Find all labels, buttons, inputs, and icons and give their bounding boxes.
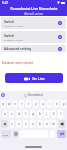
button[interactable]: l xyxy=(58,110,63,118)
button[interactable]: Switch xyxy=(1,31,66,43)
staticText: ?123 xyxy=(3,133,9,136)
staticText: v xyxy=(32,122,34,126)
button[interactable]: . xyxy=(50,130,55,138)
staticText: o xyxy=(56,102,58,106)
staticText: Ahmed Loubna xyxy=(24,12,43,16)
button[interactable]: d xyxy=(16,110,21,118)
staticText: k xyxy=(53,112,55,116)
button[interactable]: u xyxy=(40,100,45,108)
button[interactable]: a xyxy=(3,110,7,118)
button[interactable]: k xyxy=(51,110,56,118)
staticText: CAMERA SWITCH xyxy=(4,38,24,41)
staticText: l xyxy=(60,112,61,116)
staticText: 9:41 xyxy=(2,1,9,5)
staticText: q xyxy=(2,102,4,106)
staticText: Go Live xyxy=(32,76,45,81)
button[interactable]: x xyxy=(16,120,21,128)
button[interactable]: s xyxy=(9,110,14,118)
button[interactable]: Emoji xyxy=(13,130,18,138)
button[interactable]: n xyxy=(44,120,49,128)
button[interactable]: Go Live xyxy=(5,73,63,83)
staticText: h xyxy=(39,112,41,116)
button[interactable]: t xyxy=(26,100,31,108)
staticText: b xyxy=(39,122,41,126)
staticText: Switch xyxy=(4,20,15,24)
button[interactable]: ?123 xyxy=(1,130,11,138)
staticText: p xyxy=(63,102,65,106)
button[interactable]: j xyxy=(44,110,49,118)
staticText: j xyxy=(46,112,47,116)
button[interactable]: i xyxy=(47,100,52,108)
button[interactable]: c xyxy=(23,120,28,128)
button[interactable]: p xyxy=(61,100,66,108)
button[interactable]: Backspace xyxy=(58,120,66,128)
button[interactable]: r xyxy=(19,100,24,108)
staticText: w xyxy=(8,102,11,106)
button[interactable]: Switch xyxy=(1,17,66,29)
staticText: Ramadaniat Live Manachute xyxy=(10,6,58,11)
button[interactable]: v xyxy=(30,120,35,128)
staticText: i xyxy=(49,102,50,106)
staticText: f xyxy=(25,112,27,116)
staticText: n xyxy=(46,122,48,126)
staticText: Ramadaniat xyxy=(28,93,43,97)
staticText: . xyxy=(52,132,53,136)
staticText: r xyxy=(21,102,23,106)
button[interactable]: Advanced setting xyxy=(1,45,66,52)
staticText: x xyxy=(18,122,20,126)
button[interactable]: q xyxy=(1,100,5,108)
button[interactable]: e xyxy=(13,100,17,108)
button[interactable]: g xyxy=(30,110,35,118)
staticText: y xyxy=(35,102,37,106)
button[interactable]: b xyxy=(37,120,42,128)
staticText: g xyxy=(32,112,34,116)
staticText: d xyxy=(18,112,20,116)
staticText: CAMERA SWITCH xyxy=(4,24,24,27)
button[interactable]: Shift xyxy=(1,120,8,128)
button[interactable]: m xyxy=(51,120,56,128)
button[interactable]: f xyxy=(23,110,28,118)
button[interactable]: y xyxy=(33,100,38,108)
staticText: t xyxy=(28,102,30,106)
staticText: m xyxy=(52,122,55,126)
button[interactable]: Enter xyxy=(57,130,66,138)
button[interactable]: h xyxy=(37,110,42,118)
staticText: z xyxy=(11,122,13,126)
staticText: u xyxy=(42,102,44,106)
staticText: s xyxy=(11,112,13,116)
staticText: c xyxy=(25,122,27,126)
staticText: Broadcast name required xyxy=(2,61,33,65)
button[interactable]: z xyxy=(10,120,14,128)
button[interactable]: w xyxy=(7,100,11,108)
button[interactable]: o xyxy=(54,100,59,108)
staticText: Switch xyxy=(4,34,15,38)
staticText: Advanced setting xyxy=(4,47,32,51)
staticText: a xyxy=(4,112,6,116)
other: Google keyboard xyxy=(1,93,5,97)
staticText: e xyxy=(14,102,16,106)
